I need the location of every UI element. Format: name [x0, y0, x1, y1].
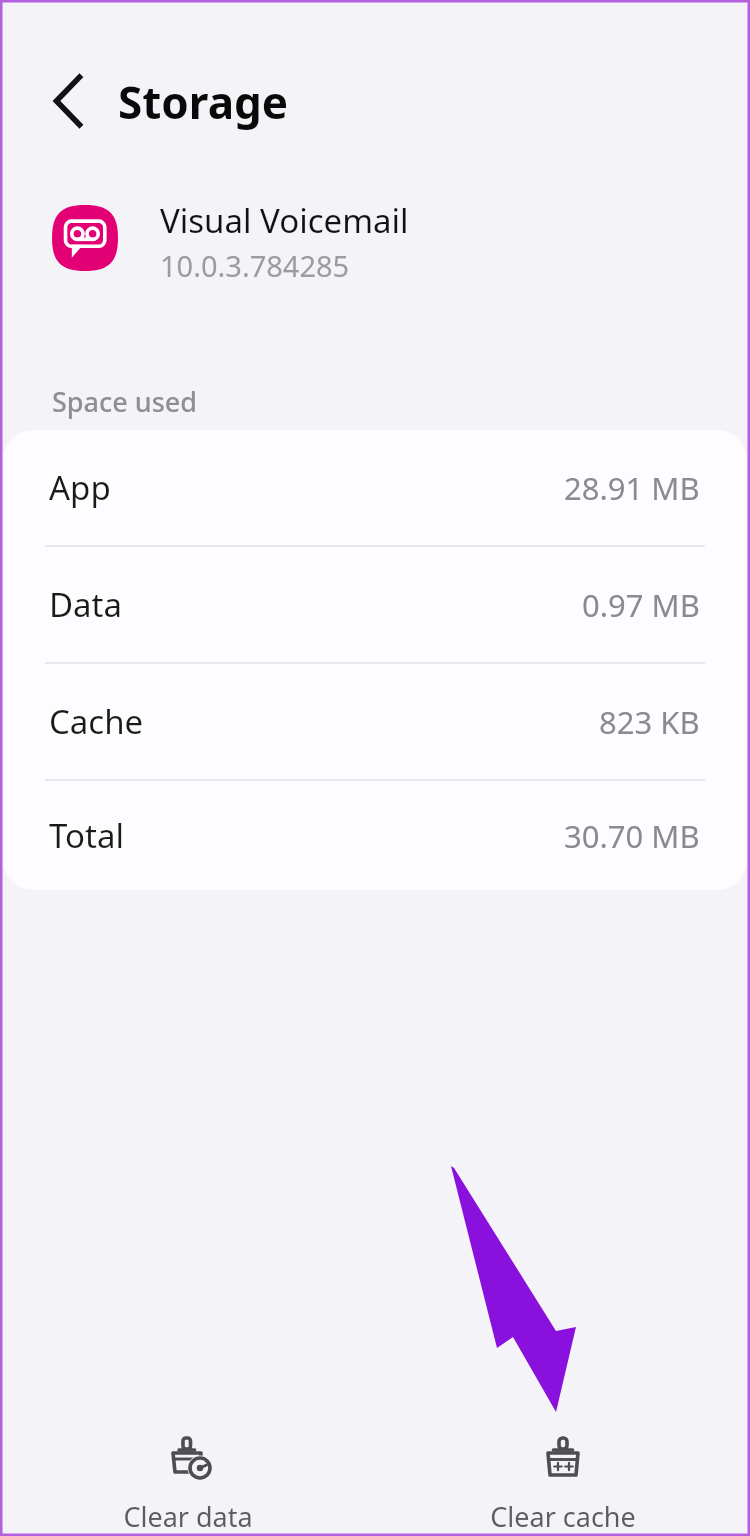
button[interactable]: App — [3, 430, 747, 545]
staticText: 10.0.3.784285 — [160, 246, 350, 285]
staticText: 28.91 MB — [564, 467, 700, 509]
button[interactable]: Clear cache — [375, 1416, 750, 1536]
button[interactable]: Clear data — [0, 1416, 375, 1536]
staticText: 0.97 MB — [582, 584, 700, 626]
staticText: Storage — [118, 72, 289, 132]
staticText: Clear cache — [490, 1498, 636, 1535]
button[interactable]: Back — [36, 66, 104, 136]
staticText: Visual Voicemail — [160, 198, 409, 243]
staticText: Clear data — [123, 1498, 253, 1535]
staticText: App — [49, 465, 111, 510]
staticText: Space used — [52, 383, 198, 420]
staticText: Cache — [49, 699, 144, 744]
button[interactable]: Cache — [3, 664, 747, 779]
staticText: 823 KB — [599, 701, 700, 743]
staticText: Total — [49, 813, 124, 858]
staticText: 30.70 MB — [564, 815, 700, 857]
button[interactable]: Data — [3, 547, 747, 662]
button[interactable]: Total — [3, 781, 747, 890]
staticText: Data — [49, 582, 123, 627]
